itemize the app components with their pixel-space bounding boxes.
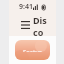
button[interactable]: Menu <box>17 17 33 33</box>
button[interactable]: Featured <box>15 40 50 60</box>
staticText: Discover <box>33 14 48 36</box>
staticText: 9:41 <box>19 2 33 12</box>
staticText: Featured <box>23 48 42 52</box>
